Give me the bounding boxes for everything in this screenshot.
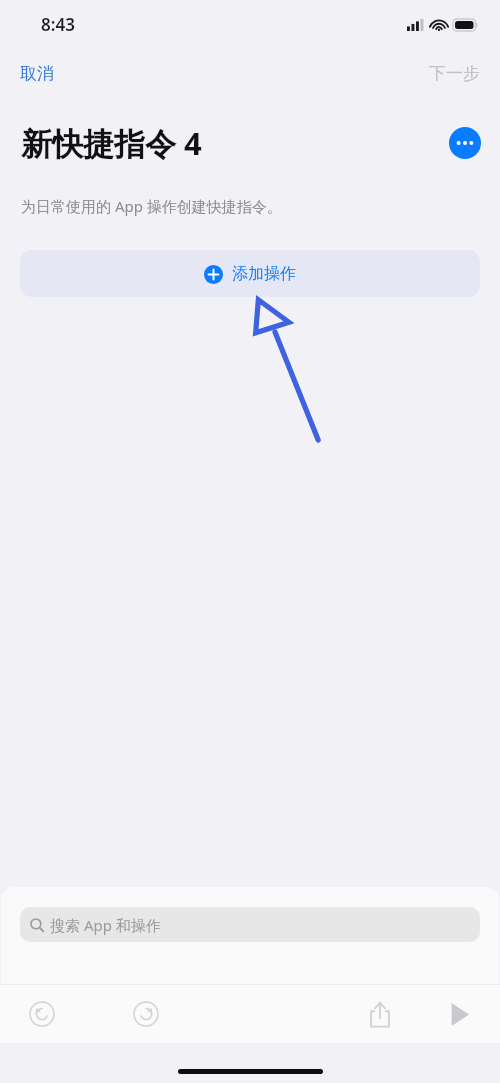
button[interactable]: More options bbox=[443, 121, 487, 165]
button[interactable]: 添加操作 bbox=[20, 250, 480, 297]
staticText: 取消 bbox=[20, 63, 54, 84]
button[interactable]: Share bbox=[358, 992, 402, 1036]
button[interactable]: Redo bbox=[124, 992, 168, 1036]
staticText: 搜索 App 和操作 bbox=[50, 915, 161, 935]
staticText: 8:43 bbox=[41, 13, 75, 36]
staticText: 新快捷指令 4 bbox=[21, 122, 202, 164]
button[interactable]: Run bbox=[438, 992, 482, 1036]
button[interactable]: Undo bbox=[20, 992, 64, 1036]
staticText: 添加操作 bbox=[232, 264, 296, 284]
staticText: 为日常使用的 App 操作创建快捷指令。 bbox=[21, 196, 282, 216]
button[interactable]: 取消 bbox=[0, 59, 74, 88]
button[interactable]: 下一步 bbox=[409, 59, 500, 88]
button[interactable]: 搜索 App 和操作 bbox=[20, 907, 480, 942]
staticText: 下一步 bbox=[429, 63, 480, 84]
